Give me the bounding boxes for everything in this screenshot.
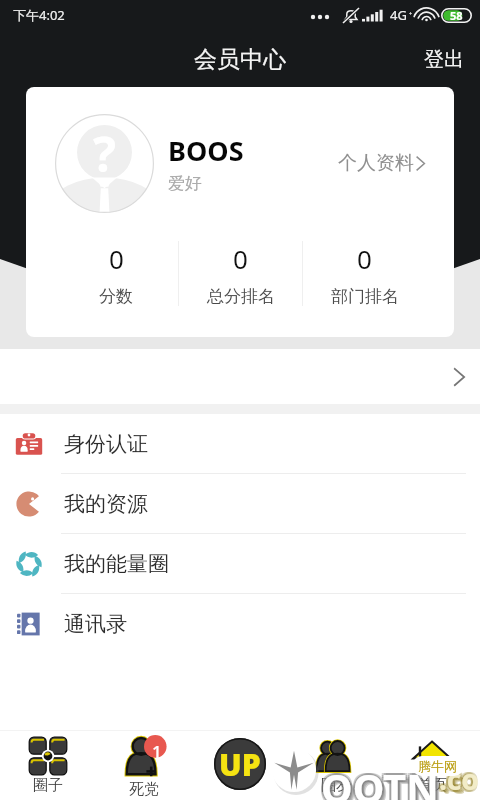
staticText: 分数	[99, 286, 133, 307]
staticText: .com	[441, 758, 480, 798]
staticText: .com	[437, 758, 480, 798]
staticText: 0	[357, 241, 372, 276]
staticText: 0	[109, 241, 124, 276]
staticText: QQTN	[319, 760, 437, 800]
staticText: BOOS	[168, 132, 244, 169]
button[interactable]: 登出	[408, 35, 480, 84]
staticText: 下午4:02	[13, 6, 65, 24]
staticText: QQTN	[321, 758, 439, 800]
staticText: QQTN	[323, 760, 441, 800]
button[interactable]: 0	[179, 234, 302, 313]
staticText: 爱好	[168, 173, 202, 194]
button[interactable]: 0	[303, 234, 426, 313]
staticText: 圈子	[33, 776, 63, 795]
staticText: .com	[443, 764, 480, 798]
staticText: .com	[441, 762, 480, 798]
staticText: QQTN	[325, 764, 443, 800]
button[interactable]: 我的资源	[0, 474, 480, 534]
staticText: 1	[152, 740, 162, 763]
button[interactable]	[0, 349, 480, 404]
button[interactable]: 通讯录	[0, 594, 480, 654]
staticText: 总分排名	[207, 286, 275, 307]
staticText: QQTN	[319, 762, 437, 800]
staticText: QQTN	[321, 760, 439, 800]
staticText: QQTN	[319, 758, 437, 800]
button[interactable]: 身份认证	[0, 414, 480, 474]
button[interactable]: 0	[54, 234, 178, 313]
staticText: 通讯录	[64, 611, 127, 637]
staticText: 圈友	[321, 776, 351, 795]
staticText: 58	[450, 8, 463, 23]
staticText: QQTN	[323, 758, 441, 800]
staticText: QQTN	[324, 763, 442, 800]
staticText: 死党	[129, 780, 159, 799]
staticText: .com	[439, 758, 480, 798]
staticText: UP	[219, 744, 261, 785]
staticText: 个人资料	[338, 151, 414, 175]
staticText: 腾牛网	[418, 758, 457, 774]
staticText: .com	[437, 762, 480, 798]
button[interactable]: 圈友	[288, 731, 384, 800]
staticText: .com	[439, 762, 480, 798]
staticText: QQTN	[323, 762, 441, 800]
staticText: .com	[441, 760, 480, 798]
staticText: 登出	[424, 47, 464, 72]
staticText: 会员中心	[194, 45, 286, 74]
staticText: .com	[442, 763, 480, 798]
staticText: 4G	[390, 6, 407, 24]
staticText: .com	[437, 760, 480, 798]
button[interactable]: UP 发布	[192, 731, 288, 800]
staticText: 身份认证	[64, 431, 148, 457]
staticText: QQTN	[321, 762, 439, 800]
staticText: 部门排名	[331, 286, 399, 307]
button[interactable]: 1	[96, 731, 192, 800]
staticText: 我的资源	[64, 491, 148, 517]
button[interactable]: 个人资料	[324, 141, 439, 185]
staticText: 0	[233, 241, 248, 276]
button[interactable]: 首页	[384, 731, 480, 800]
staticText: 首页	[417, 776, 447, 795]
staticText: ?	[93, 121, 116, 186]
button[interactable]: 圈子	[0, 731, 96, 800]
staticText: 我的能量圈	[64, 551, 169, 577]
staticText: .com	[439, 760, 480, 798]
staticText: ⁺	[409, 9, 413, 21]
button[interactable]: 我的能量圈	[0, 534, 480, 594]
